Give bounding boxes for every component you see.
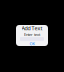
staticText: Enter text [24,32,40,37]
staticText: OK [29,41,34,46]
staticText: Add Text [21,25,42,32]
